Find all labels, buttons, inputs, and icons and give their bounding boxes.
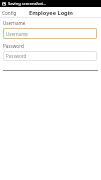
button[interactable]: Password: [3, 51, 97, 61]
other: Screenshot saved: [2, 2, 6, 6]
staticText: Config: [2, 10, 17, 16]
button[interactable]: Username: [3, 28, 97, 39]
staticText: Password: [6, 53, 27, 59]
button[interactable]: Config: [0, 8, 19, 18]
staticText: Password: [3, 43, 24, 49]
staticText: Username: [3, 20, 26, 26]
staticText: Employee Login: [29, 9, 73, 17]
staticText: Saving screenshot...: [8, 1, 47, 7]
staticText: Username: [6, 31, 28, 37]
